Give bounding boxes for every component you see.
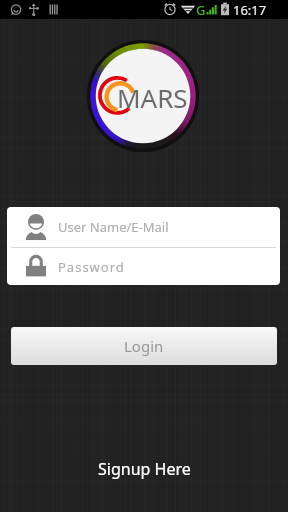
button[interactable]: Signup Here	[90, 454, 199, 484]
button[interactable]: Login	[11, 327, 277, 365]
staticText: 16:17	[233, 1, 267, 19]
button[interactable]: User Name/E-Mail	[7, 207, 280, 247]
staticText: User Name/E-Mail	[58, 218, 169, 236]
staticText: Signup Here	[98, 458, 191, 480]
staticText: G	[196, 1, 206, 19]
staticText: Login	[124, 336, 164, 356]
button[interactable]: Password	[7, 248, 280, 285]
staticText: Password	[58, 258, 125, 276]
staticText: MARS	[117, 80, 188, 115]
